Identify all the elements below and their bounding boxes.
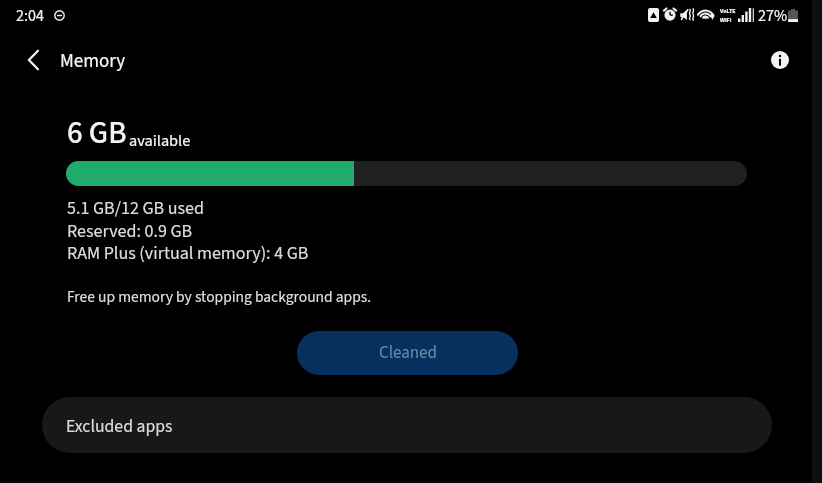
button[interactable]: Navigate up <box>11 37 57 83</box>
staticText: 6 GB <box>67 111 127 155</box>
button[interactable]: Cleaned <box>297 331 518 375</box>
staticText: Memory <box>60 48 126 75</box>
staticText: 5.1 GB/12 GB used Reserved: 0.9 GB RAM P… <box>67 196 309 266</box>
staticText: 2:04 <box>16 5 44 28</box>
button[interactable]: Information <box>757 37 803 83</box>
staticText: 27% <box>758 5 788 28</box>
staticText: available <box>129 129 191 152</box>
staticText: Excluded apps <box>66 414 173 439</box>
staticText: Free up memory by stopping background ap… <box>67 286 372 308</box>
button[interactable]: Excluded apps <box>42 397 772 453</box>
staticText: WiFi <box>720 16 732 25</box>
staticText: Cleaned <box>379 341 437 365</box>
staticText: VoLTE <box>720 7 736 16</box>
